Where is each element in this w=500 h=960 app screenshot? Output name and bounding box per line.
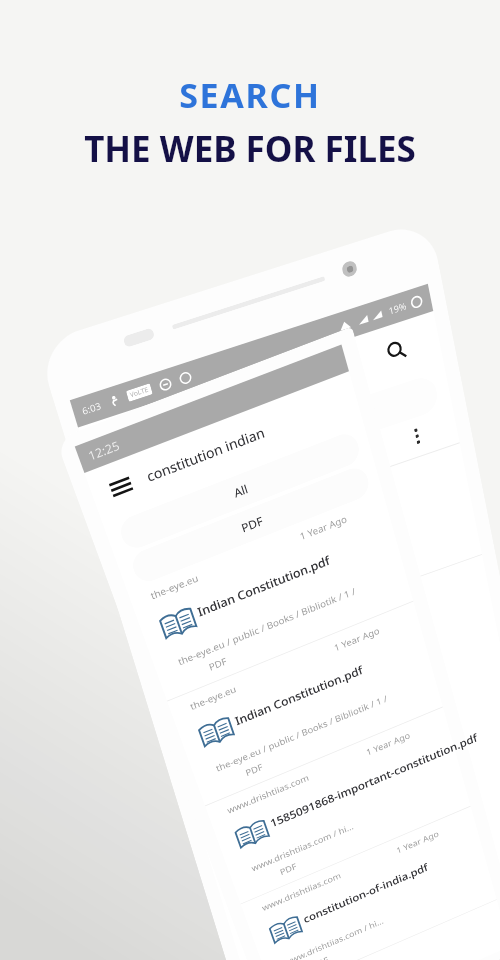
button[interactable]: Search [378, 331, 414, 370]
staticText: the-eye.eu [188, 682, 238, 712]
staticText: 1 Year Ago [298, 512, 349, 543]
button[interactable]: More options [414, 428, 420, 444]
staticText: 6:03 [80, 399, 103, 418]
staticText: 1 Year Ago [332, 624, 381, 654]
staticText: PDF [278, 860, 298, 877]
staticText: PDF [244, 760, 265, 778]
staticText: PDF [311, 954, 330, 960]
staticText: VoLTE [129, 385, 150, 400]
staticText: THE WEB FOR FILES [84, 125, 416, 173]
button[interactable]: www.drishtiias.com [243, 813, 498, 960]
button[interactable]: All [116, 429, 362, 553]
staticText: 1585091868-important-constitution.pdf [268, 728, 483, 830]
staticText: Indian Constitution.pdf [233, 624, 456, 728]
staticText: the-eye.eu / public / Books / Bibliotik … [214, 692, 389, 774]
staticText: constitution-of-india.pdf [301, 825, 500, 926]
staticText: All [232, 480, 251, 501]
button[interactable]: Menu [103, 468, 139, 505]
staticText: the-eye.eu [149, 571, 200, 602]
staticText: 1 Year Ago [365, 729, 412, 758]
staticText: Indian Constitution.pdf [195, 514, 426, 620]
button[interactable]: the-eye.eu [170, 608, 444, 811]
staticText: www.drishtiias.com [260, 870, 342, 913]
staticText: 19% [387, 299, 408, 317]
staticText: constitution indian [144, 422, 267, 485]
staticText: www.drishtiias.com / hi... [283, 915, 385, 960]
staticText: PDF [207, 654, 229, 673]
button[interactable]: Date [108, 373, 440, 518]
staticText: www.drishtiias.com [225, 771, 310, 816]
button[interactable]: the-eye.eu [129, 496, 415, 707]
staticText: 12:25 [86, 436, 122, 464]
staticText: 1 Year Ago [395, 827, 441, 856]
staticText: Date [251, 436, 283, 462]
staticText: the-eye.eu / public / Books / Bibliotik … [176, 584, 357, 668]
staticText: SEARCH [179, 72, 321, 118]
button[interactable]: www.drishtiias.com [208, 714, 472, 909]
staticText: PDF [239, 512, 266, 536]
button[interactable]: PDF [129, 464, 372, 586]
staticText: www.drishtiias.com / hi... [250, 820, 355, 874]
